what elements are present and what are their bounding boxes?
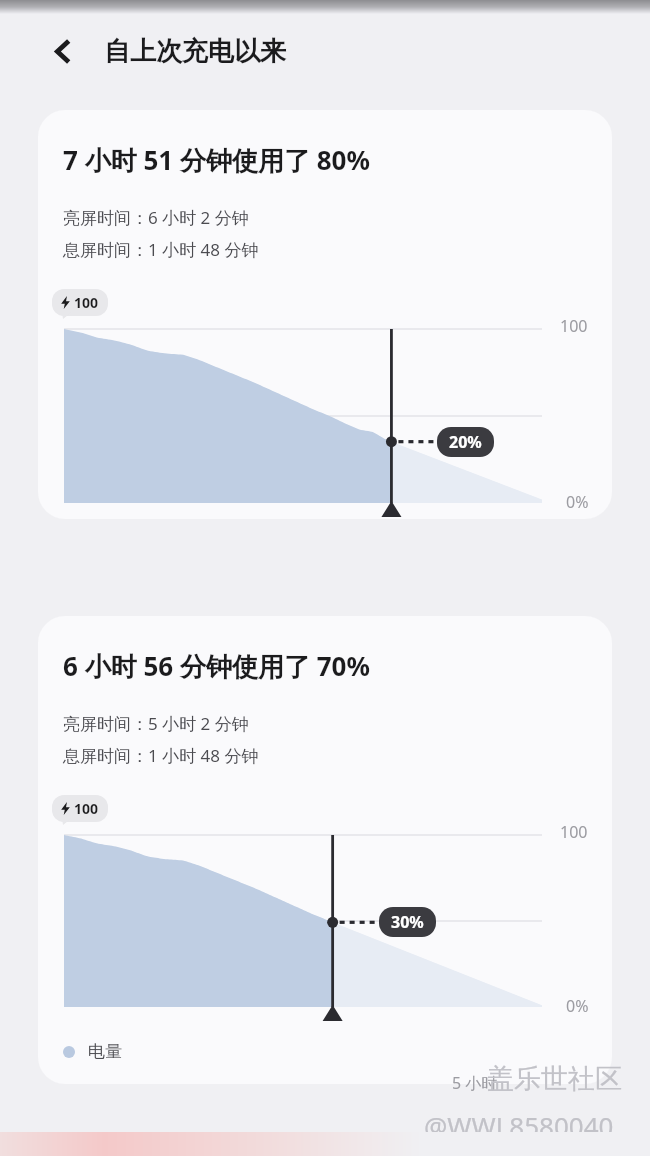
staticText: 息屏时间：1 小时 48 分钟: [63, 744, 259, 767]
staticText: 0%: [566, 491, 589, 513]
staticText: @WWL8580040: [424, 1108, 614, 1143]
staticText: 100: [560, 315, 588, 337]
staticText: 息屏时间：1 小时 48 分钟: [63, 238, 259, 261]
staticText: 100: [74, 799, 99, 818]
staticText: 亮屏时间：6 小时 2 分钟: [63, 206, 249, 229]
staticText: 30%: [391, 911, 424, 933]
staticText: 电量: [88, 1041, 122, 1062]
button[interactable]: 30%: [379, 907, 436, 937]
staticText: 0%: [566, 995, 589, 1017]
staticText: 盖乐世社区: [487, 1062, 622, 1096]
staticText: 7 小时 51 分钟使用了 80%: [63, 142, 370, 178]
button[interactable]: 电量: [63, 1041, 122, 1062]
button[interactable]: 6 小时 56 分钟使用了 70%: [38, 616, 612, 1084]
staticText: 100: [74, 293, 99, 312]
button[interactable]: 20%: [437, 427, 494, 457]
staticText: 亮屏时间：5 小时 2 分钟: [63, 712, 249, 735]
staticText: 100: [560, 821, 588, 843]
staticText: 自上次充电以来: [104, 35, 286, 68]
button[interactable]: Back: [46, 33, 82, 69]
staticText: 20%: [449, 431, 482, 453]
staticText: 6 小时 56 分钟使用了 70%: [63, 648, 370, 684]
button[interactable]: 7 小时 51 分钟使用了 80%: [38, 110, 612, 519]
staticText: 5 小时: [452, 1072, 498, 1094]
